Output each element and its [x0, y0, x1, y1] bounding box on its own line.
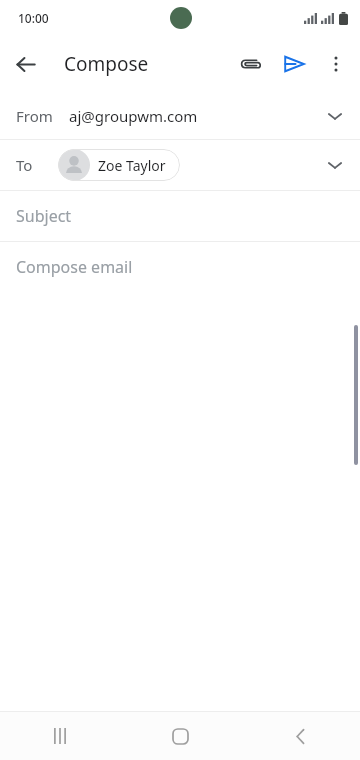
button[interactable]: More options — [316, 44, 356, 84]
button[interactable]: Subject — [0, 191, 360, 241]
staticText: From — [16, 106, 53, 126]
staticText: Subject — [16, 205, 72, 227]
button[interactable]: Back — [240, 712, 360, 760]
button[interactable]: Compose email — [0, 242, 360, 292]
staticText: aj@groupwm.com — [69, 106, 198, 126]
button[interactable]: Home — [120, 712, 240, 760]
button[interactable]: To — [0, 140, 360, 190]
staticText: To — [16, 155, 33, 175]
button[interactable]: Attach file — [228, 42, 272, 86]
button[interactable]: From — [0, 92, 360, 139]
button[interactable]: Back — [6, 45, 44, 83]
button[interactable]: Send — [272, 42, 316, 86]
staticText: 10:00 — [18, 10, 49, 26]
staticText: Compose — [64, 51, 149, 77]
staticText: Compose email — [16, 256, 133, 278]
staticText: Zoe Taylor — [98, 156, 166, 175]
button[interactable]: Zoe Taylor — [58, 149, 180, 181]
button[interactable]: Recent apps — [0, 712, 120, 760]
